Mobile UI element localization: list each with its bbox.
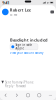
button[interactable]: Forward xyxy=(11,90,22,100)
button[interactable]: Trash xyxy=(34,90,45,100)
staticText: View your account activity xyxy=(10,51,43,55)
staticText: to me xyxy=(10,13,18,17)
staticText: Sent from my iPhone xyxy=(5,81,34,84)
staticText: Baselight included xyxy=(10,37,48,42)
button[interactable]: More xyxy=(45,90,56,100)
staticText: Robert Lee xyxy=(10,7,31,13)
staticText: 9:41 xyxy=(2,0,9,5)
button[interactable]: View your account activity xyxy=(10,50,43,55)
staticText: Sign in with Apple xyxy=(15,43,32,50)
button[interactable]: Archive xyxy=(22,90,34,100)
button[interactable]: Sign in with Apple xyxy=(10,42,38,50)
button[interactable]: Back xyxy=(0,90,11,100)
button[interactable]: More xyxy=(50,10,56,13)
staticText: Reply · Forward xyxy=(5,85,26,88)
